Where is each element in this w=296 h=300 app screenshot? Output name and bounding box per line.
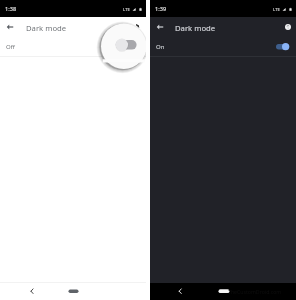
button[interactable]: Back [4,21,16,33]
button[interactable]: On [150,38,296,55]
staticText: Dark mode [175,23,216,33]
button[interactable]: Back [154,21,166,33]
staticText: TheCustomDroid.com [228,288,282,295]
button[interactable]: Help [282,21,294,33]
staticText: LTE [123,6,130,12]
button[interactable]: Off [0,38,146,55]
staticText: On [156,43,165,51]
staticText: Off [6,43,15,51]
staticText: Dark mode [26,23,67,33]
staticText: 1:39 [155,5,167,13]
staticText: LTE [273,6,280,12]
staticText: 1:38 [5,5,17,13]
